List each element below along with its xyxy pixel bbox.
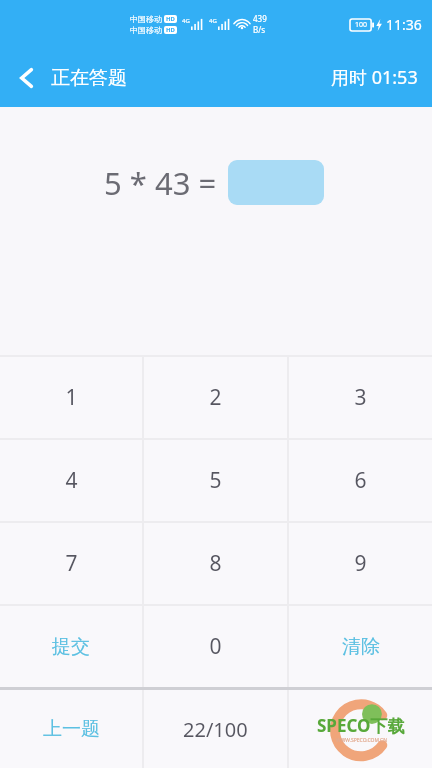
staticText: 22/100	[183, 716, 248, 743]
button[interactable]: 提交	[0, 606, 142, 687]
other: Back	[16, 67, 38, 89]
staticText: HD	[166, 15, 175, 23]
button[interactable]: 4	[0, 440, 142, 521]
staticText: 11:36	[386, 15, 422, 34]
button[interactable]: 0	[144, 606, 287, 687]
staticText: B/s	[253, 24, 266, 35]
staticText: 8	[209, 549, 222, 578]
button[interactable]: 7	[0, 523, 142, 604]
staticText: 9	[354, 549, 367, 578]
staticText: 中国移动	[130, 25, 162, 35]
button[interactable]: 3	[289, 357, 432, 438]
button[interactable]: 2	[144, 357, 287, 438]
staticText: 2	[209, 383, 222, 412]
button[interactable]: 上一题	[0, 690, 142, 768]
button[interactable]: 6	[289, 440, 432, 521]
staticText: 4	[65, 466, 78, 495]
staticText: HD	[166, 26, 175, 34]
button[interactable]: 9	[289, 523, 432, 604]
staticText: 3	[354, 383, 367, 412]
staticText: 用时 01:53	[331, 65, 418, 90]
button[interactable]: Back	[0, 56, 139, 100]
button[interactable]: 1	[0, 357, 142, 438]
staticText: 清除	[342, 635, 380, 659]
staticText: SPECO下载	[317, 714, 405, 737]
staticText: 6	[354, 466, 367, 495]
staticText: 5	[209, 466, 222, 495]
staticText: 7	[65, 549, 78, 578]
staticText: 1	[65, 383, 78, 412]
staticText: 提交	[52, 635, 90, 659]
button[interactable]: 8	[144, 523, 287, 604]
staticText: WWW.SPECO.COM.CN	[336, 737, 387, 744]
staticText: 5 * 43 =	[104, 162, 217, 204]
button[interactable]: Answer input	[228, 160, 324, 205]
staticText: 正在答题	[51, 66, 127, 90]
button[interactable]: 清除	[289, 606, 432, 687]
staticText: 4G	[209, 17, 217, 25]
staticText: 0	[209, 632, 222, 661]
button[interactable]: 5	[144, 440, 287, 521]
staticText: 4G	[182, 17, 190, 25]
staticText: 中国移动	[130, 14, 162, 24]
staticText: 上一题	[43, 717, 100, 741]
staticText: 439	[253, 13, 267, 24]
staticText: 100	[355, 20, 368, 30]
